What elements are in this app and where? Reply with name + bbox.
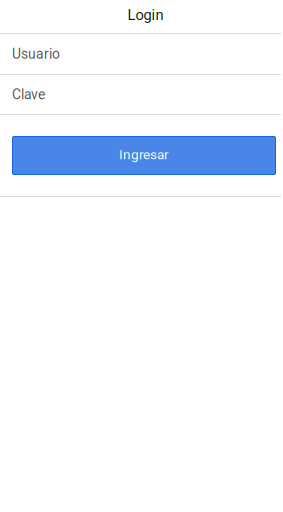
staticText: Ingresar <box>119 146 169 162</box>
button[interactable]: Ingresar <box>12 136 276 175</box>
button[interactable]: Usuario <box>0 34 283 74</box>
staticText: Clave <box>12 86 45 103</box>
button[interactable]: Clave <box>0 75 283 114</box>
staticText: Login <box>127 6 163 24</box>
staticText: Usuario <box>12 46 60 62</box>
